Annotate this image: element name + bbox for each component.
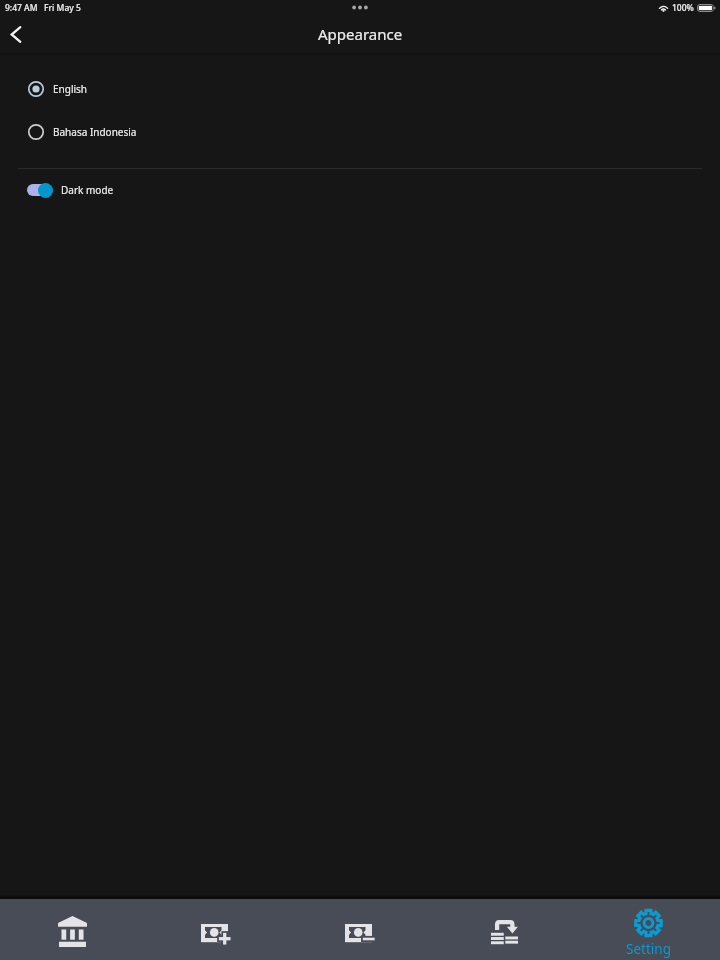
button[interactable]: Dark mode: [0, 169, 720, 211]
staticText: Fri May 5: [44, 2, 81, 14]
button[interactable]: Accounts: [0, 899, 144, 960]
button[interactable]: Back: [0, 19, 31, 50]
button[interactable]: Setting: [576, 899, 720, 960]
staticText: Bahasa Indonesia: [53, 125, 137, 139]
staticText: Dark mode: [61, 183, 114, 197]
staticText: English: [53, 82, 88, 96]
button[interactable]: English: [0, 67, 720, 110]
button[interactable]: Income: [144, 899, 288, 960]
staticText: Appearance: [318, 24, 403, 44]
button[interactable]: Transfer: [432, 899, 576, 960]
staticText: Setting: [626, 940, 671, 958]
button[interactable]: Expense: [288, 899, 432, 960]
staticText: 9:47 AM: [5, 2, 38, 14]
staticText: 100%: [672, 2, 694, 14]
button[interactable]: Bahasa Indonesia: [0, 110, 720, 153]
